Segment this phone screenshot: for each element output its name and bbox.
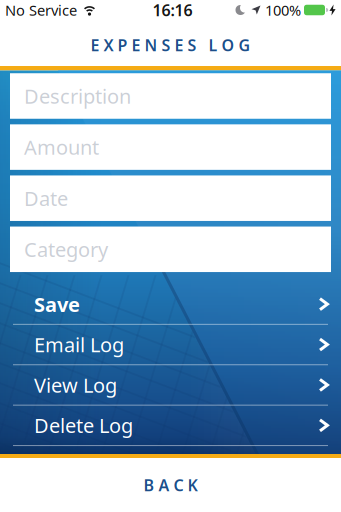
button[interactable]: Amount bbox=[0, 124, 341, 170]
button[interactable]: Save bbox=[0, 284, 341, 325]
staticText: 100% bbox=[265, 0, 301, 20]
staticText: View Log bbox=[34, 372, 117, 398]
staticText: No Service bbox=[5, 0, 77, 20]
button[interactable]: Category bbox=[0, 226, 341, 272]
button[interactable]: Email Log bbox=[0, 325, 341, 365]
button[interactable]: Description bbox=[0, 73, 341, 119]
staticText: E X P E N S E S L O G bbox=[90, 34, 250, 56]
staticText: Save bbox=[34, 291, 80, 317]
staticText: Delete Log bbox=[34, 412, 133, 439]
button[interactable]: View Log bbox=[0, 365, 341, 406]
staticText: B A C K bbox=[143, 474, 197, 496]
staticText: 16:16 bbox=[152, 0, 192, 21]
staticText: Description bbox=[24, 83, 131, 109]
button[interactable]: Delete Log bbox=[0, 406, 341, 446]
staticText: Amount bbox=[24, 134, 99, 160]
staticText: Email Log bbox=[34, 331, 124, 358]
button[interactable]: B A C K bbox=[113, 464, 227, 506]
staticText: Category bbox=[24, 236, 108, 263]
staticText: Date bbox=[24, 185, 68, 211]
button[interactable]: Date bbox=[0, 175, 341, 221]
